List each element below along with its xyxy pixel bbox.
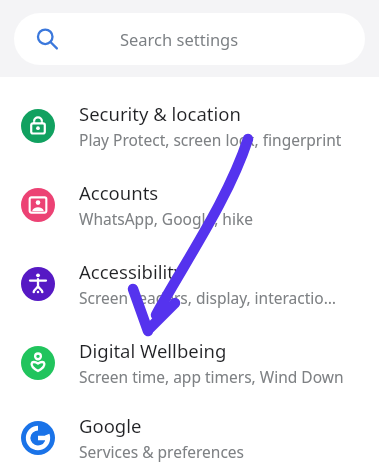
staticText: Services & preferences (79, 441, 244, 462)
staticText: Accessibility (79, 259, 184, 284)
staticText: Search settings (120, 28, 239, 50)
button[interactable]: Google (0, 402, 379, 473)
button[interactable]: Security & location (0, 86, 379, 165)
staticText: Screen time, app timers, Wind Down (79, 366, 344, 387)
staticText: Google (79, 413, 142, 438)
button[interactable]: Search settings (14, 13, 365, 65)
button[interactable]: Accessibility (0, 244, 379, 323)
button[interactable]: Accounts (0, 165, 379, 244)
staticText: Accounts (79, 180, 159, 205)
button[interactable]: Digital Wellbeing (0, 323, 379, 402)
staticText: Play Protect, screen lock, fingerprint (79, 129, 342, 150)
staticText: Security & location (79, 101, 241, 126)
staticText: Screen readers, display, interactio… (79, 287, 336, 308)
staticText: Digital Wellbeing (79, 338, 227, 363)
staticText: WhatsApp, Google, hike (79, 208, 253, 229)
